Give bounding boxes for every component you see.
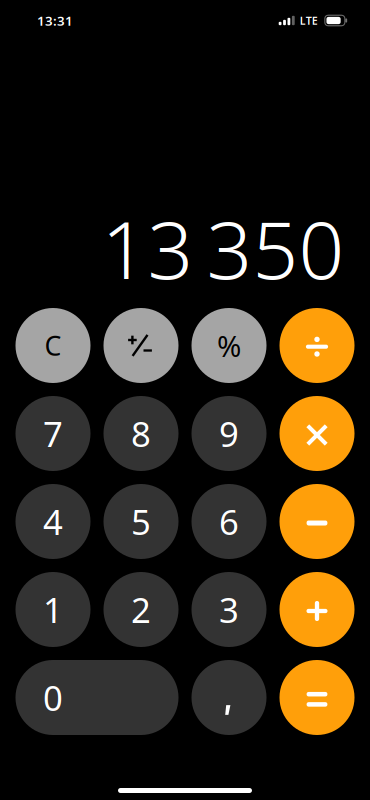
button[interactable]: Subtract (279, 484, 354, 559)
button[interactable]: Plus Minus (103, 308, 178, 383)
staticText: 5 (131, 498, 151, 544)
button[interactable]: C (15, 308, 90, 383)
staticText: 2 (131, 586, 151, 632)
staticText: 7 (43, 410, 63, 456)
button[interactable]: % (191, 308, 266, 383)
button[interactable]: 2 (103, 572, 178, 647)
button[interactable]: Decimal separator (191, 660, 266, 735)
button[interactable]: 4 (15, 484, 90, 559)
button[interactable]: 7 (15, 396, 90, 471)
button[interactable]: Divide (279, 308, 354, 383)
button[interactable]: 3 (191, 572, 266, 647)
staticText: 0 (43, 674, 63, 720)
staticText: 13:31 (37, 12, 73, 29)
button[interactable]: 0 (15, 660, 178, 735)
button[interactable]: Multiply (279, 396, 354, 471)
button[interactable]: 5 (103, 484, 178, 559)
staticText: 13 350 (101, 195, 344, 301)
staticText: 9 (219, 410, 239, 456)
button[interactable]: Add (279, 572, 354, 647)
staticText: LTE (300, 13, 318, 28)
button[interactable]: 1 (15, 572, 90, 647)
button[interactable]: Equals (279, 660, 354, 735)
button[interactable]: 6 (191, 484, 266, 559)
staticText: 1 (43, 586, 63, 632)
staticText: 8 (131, 410, 151, 456)
staticText: C (44, 328, 61, 363)
staticText: 4 (43, 498, 63, 544)
button[interactable]: 8 (103, 396, 178, 471)
staticText: 3 (219, 586, 239, 632)
button[interactable]: 9 (191, 396, 266, 471)
staticText: % (217, 326, 241, 365)
staticText: 6 (219, 498, 239, 544)
